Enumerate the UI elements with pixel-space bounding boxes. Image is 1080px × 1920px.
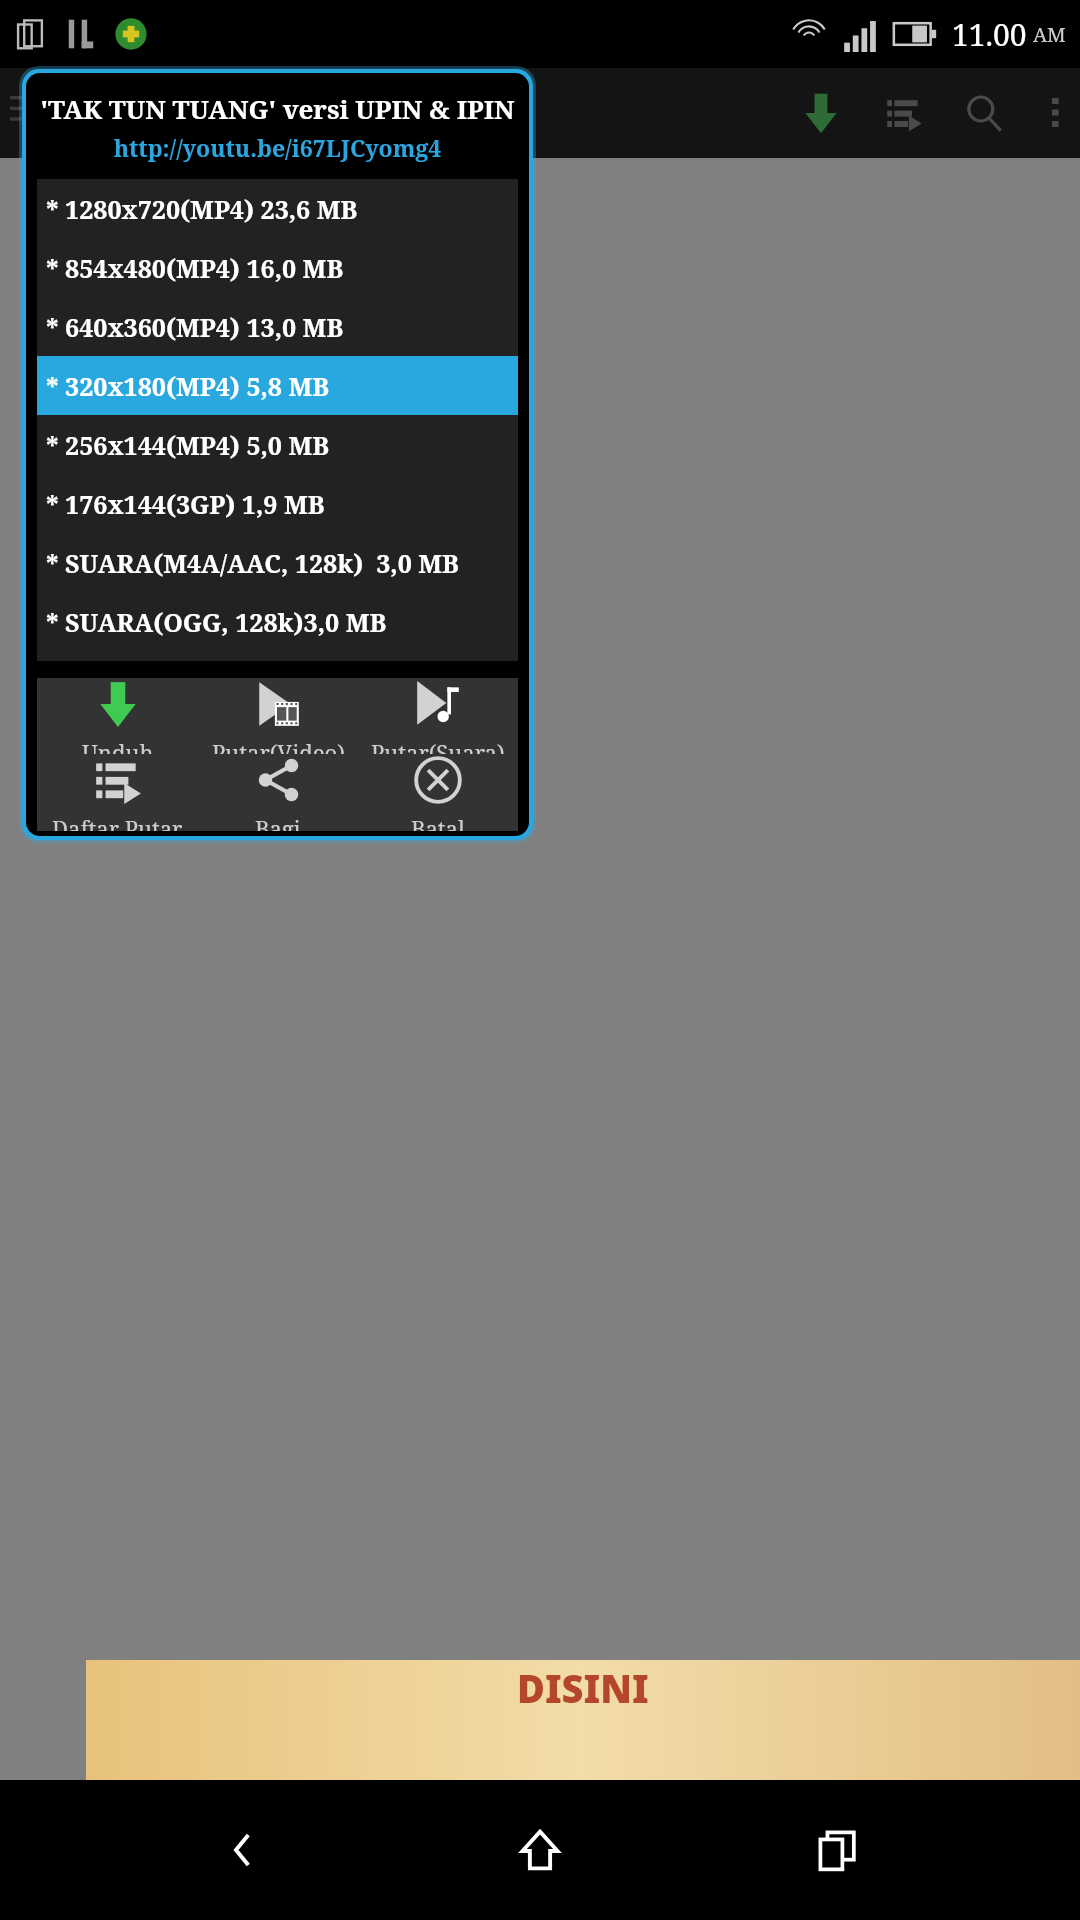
- staticText: * 640x360(MP4) 13,0 MB: [46, 310, 344, 344]
- staticText: 'TAK TUN TUANG' versi UPIN & IPIN: [37, 91, 518, 126]
- button[interactable]: * SUARA(M4A/AAC, 128k) 3,0 MB: [37, 533, 518, 592]
- staticText: Putar(Suara): [371, 737, 505, 754]
- button[interactable]: * 640x360(MP4) 13,0 MB: [37, 297, 518, 356]
- button[interactable]: Putar(Suara): [358, 678, 518, 754]
- button[interactable]: Recent apps: [783, 1795, 893, 1905]
- button[interactable]: * 320x180(MP4) 5,8 MB: [37, 356, 518, 415]
- button[interactable]: * 176x144(3GP) 1,9 MB: [37, 474, 518, 533]
- staticText: * 1280x720(MP4) 23,6 MB: [46, 192, 358, 226]
- staticText: 11.00: [952, 14, 1027, 55]
- button[interactable]: Batal: [358, 754, 518, 831]
- staticText: AM: [1033, 21, 1066, 48]
- staticText: * 176x144(3GP) 1,9 MB: [46, 487, 325, 521]
- staticText: Daftar Putar: [52, 813, 183, 831]
- staticText: * SUARA(OGG, 128k)3,0 MB: [46, 605, 387, 639]
- staticText: * 320x180(MP4) 5,8 MB: [46, 369, 330, 403]
- button[interactable]: Daftar Putar: [37, 754, 198, 831]
- staticText: * 256x144(MP4) 5,0 MB: [46, 428, 330, 462]
- staticText: DISINI: [517, 1662, 649, 1714]
- button[interactable]: * 256x144(MP4) 5,0 MB: [37, 415, 518, 474]
- button[interactable]: Back: [188, 1795, 298, 1905]
- staticText: Bagi: [255, 813, 301, 831]
- button[interactable]: Bagi: [198, 754, 358, 831]
- button[interactable]: Home: [485, 1795, 595, 1905]
- button[interactable]: http://youtu.be/i67LJCyomg4: [37, 132, 518, 163]
- staticText: * 854x480(MP4) 16,0 MB: [46, 251, 344, 285]
- button[interactable]: * 1280x720(MP4) 23,6 MB: [37, 179, 518, 238]
- button[interactable]: * SUARA(OGG, 128k)3,0 MB: [37, 592, 518, 651]
- button[interactable]: Unduh: [37, 678, 198, 754]
- button[interactable]: * 854x480(MP4) 16,0 MB: [37, 238, 518, 297]
- staticText: Putar(Video): [212, 737, 345, 754]
- staticText: TubeMate 2.4.3: [122, 93, 339, 134]
- staticText: Unduh: [82, 737, 154, 754]
- staticText: Batal: [411, 813, 465, 831]
- button[interactable]: Putar(Video): [198, 678, 358, 754]
- staticText: * SUARA(M4A/AAC, 128k) 3,0 MB: [46, 546, 459, 580]
